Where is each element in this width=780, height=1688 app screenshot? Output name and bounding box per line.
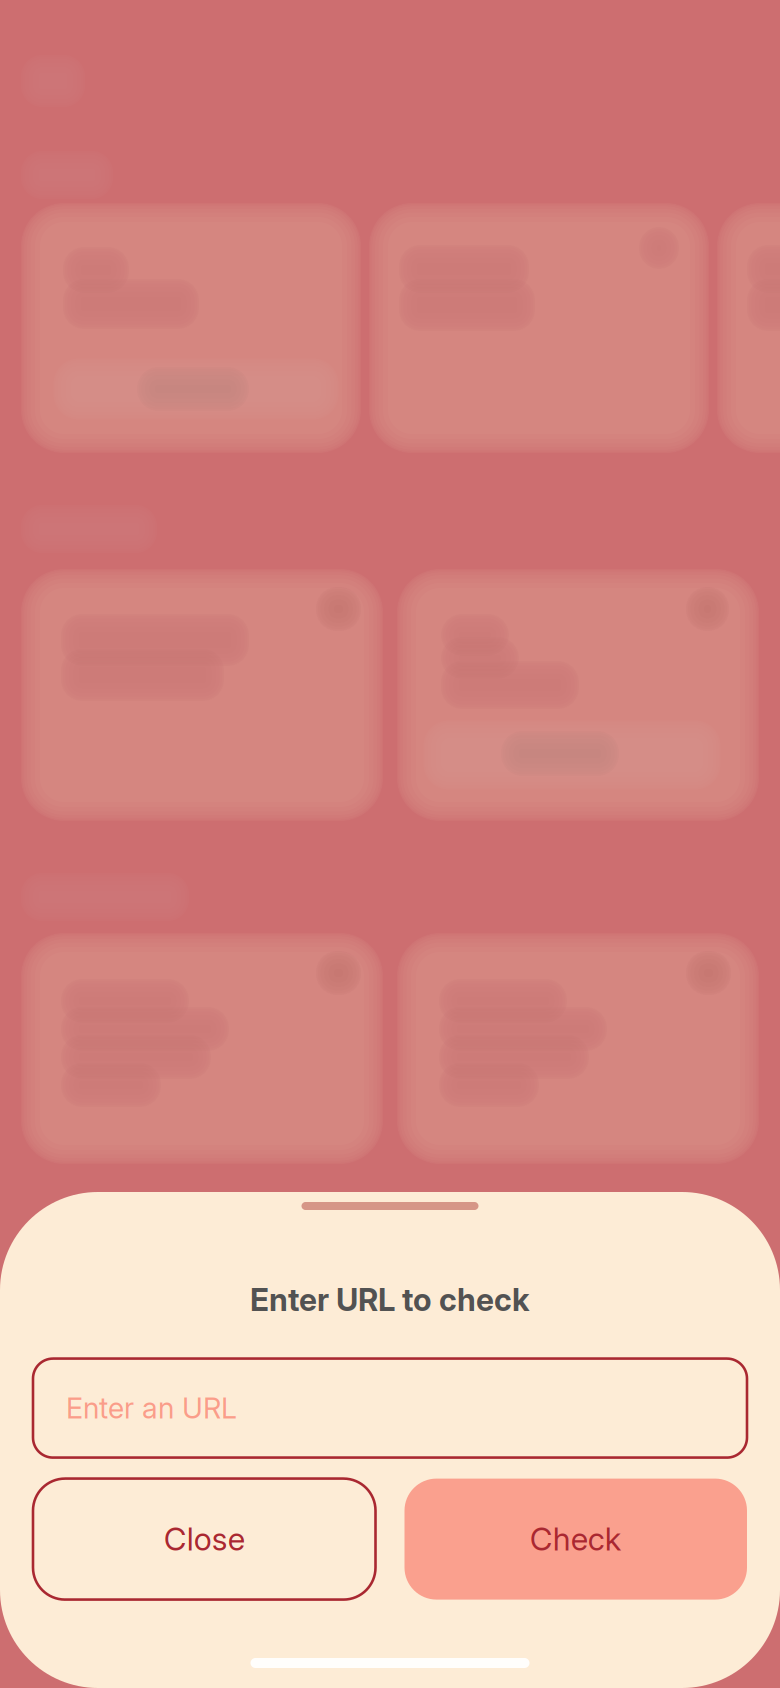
button[interactable]: Close bbox=[33, 1479, 375, 1600]
staticText: Close bbox=[164, 1520, 245, 1558]
staticText: Check bbox=[530, 1520, 622, 1558]
staticText: Enter an URL bbox=[66, 1391, 237, 1425]
staticText: Enter URL to check bbox=[250, 1281, 530, 1319]
button[interactable]: Check bbox=[404, 1479, 747, 1600]
button[interactable]: Enter an URL bbox=[33, 1359, 747, 1458]
